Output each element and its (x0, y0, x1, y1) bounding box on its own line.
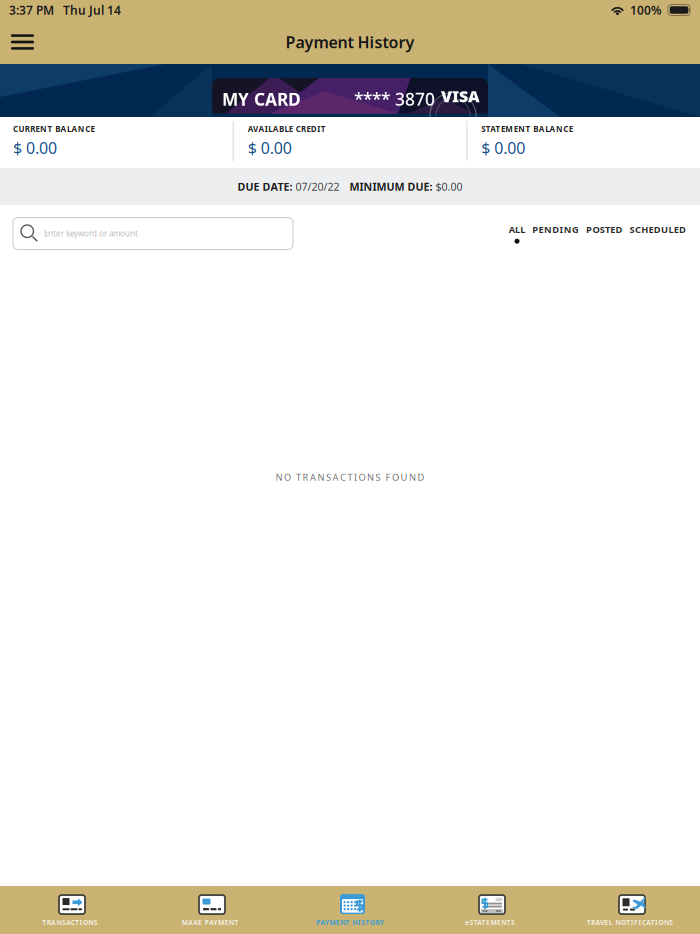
button[interactable]: PAYMENT HISTORY (280, 886, 420, 934)
button[interactable]: TRAVEL NOTIFICATIONS (560, 886, 700, 934)
staticText: eSTATEMENTS (465, 918, 515, 927)
button[interactable]: TRANSACTIONS (0, 886, 140, 934)
staticText: POSTED (586, 223, 623, 236)
staticText: CURRENT BALANCE (13, 124, 95, 134)
staticText: $ 0.00 (13, 137, 57, 158)
button[interactable]: Enter keyword or amount (13, 217, 293, 249)
staticText: ALL (509, 223, 525, 236)
staticText: Enter keyword or amount (44, 228, 138, 239)
staticText: $ 0.00 (248, 137, 292, 158)
staticText: 07/20/22 (292, 179, 339, 194)
button[interactable]: PENDING (532, 223, 579, 244)
staticText: **** 3870 (354, 87, 435, 110)
staticText: MAKE PAYMENT (182, 918, 238, 927)
button[interactable]: Menu (0, 23, 45, 61)
staticText: 100% (630, 2, 662, 18)
staticText: TRAVEL NOTIFICATIONS (587, 918, 673, 927)
button[interactable]: ALL (509, 223, 525, 244)
staticText: NO TRANSACTIONS FOUND (275, 471, 424, 483)
staticText: TRANSACTIONS (42, 918, 98, 927)
staticText: AVAILABLE CREDIT (248, 124, 326, 134)
staticText: $0.00 (432, 179, 462, 194)
staticText: Payment History (285, 31, 414, 53)
staticText: $ 0.00 (481, 137, 525, 158)
staticText: STATEMENT BALANCE (481, 124, 573, 134)
button[interactable]: MAKE PAYMENT (140, 886, 280, 934)
button[interactable]: POSTED (586, 223, 623, 244)
button[interactable]: SCHEDULED (630, 223, 686, 244)
staticText: VISA (441, 85, 480, 107)
staticText: DUE DATE: (237, 179, 292, 194)
staticText: PENDING (532, 223, 579, 236)
staticText: PAYMENT HISTORY (316, 918, 384, 927)
staticText: MINIMUM DUE: (349, 179, 432, 194)
staticText: MY CARD (222, 87, 301, 110)
staticText: Thu Jul 14 (63, 2, 121, 18)
staticText: SCHEDULED (630, 223, 686, 236)
staticText: 3:37 PM (9, 2, 54, 18)
button[interactable]: eSTATEMENTS (420, 886, 560, 934)
